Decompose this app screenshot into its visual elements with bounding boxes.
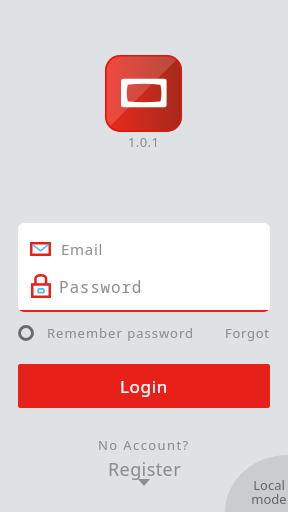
button[interactable]: Email <box>18 223 270 275</box>
other: App logo <box>105 55 182 132</box>
button[interactable]: Remember password <box>18 324 195 342</box>
staticText: No Account? <box>98 436 190 454</box>
staticText: Register <box>108 457 181 482</box>
button[interactable]: Password <box>18 266 270 307</box>
button[interactable]: No Account? <box>98 436 190 489</box>
staticText: Local mode <box>251 476 287 507</box>
staticText: Email <box>61 239 104 259</box>
staticText: Login <box>120 375 169 398</box>
staticText: 1.0.1 <box>128 133 160 151</box>
button[interactable]: Local mode <box>225 455 288 512</box>
button[interactable]: Forgot <box>225 324 270 342</box>
button[interactable]: Login <box>18 364 270 408</box>
staticText: Password <box>59 276 143 298</box>
staticText: Remember password <box>47 324 195 342</box>
